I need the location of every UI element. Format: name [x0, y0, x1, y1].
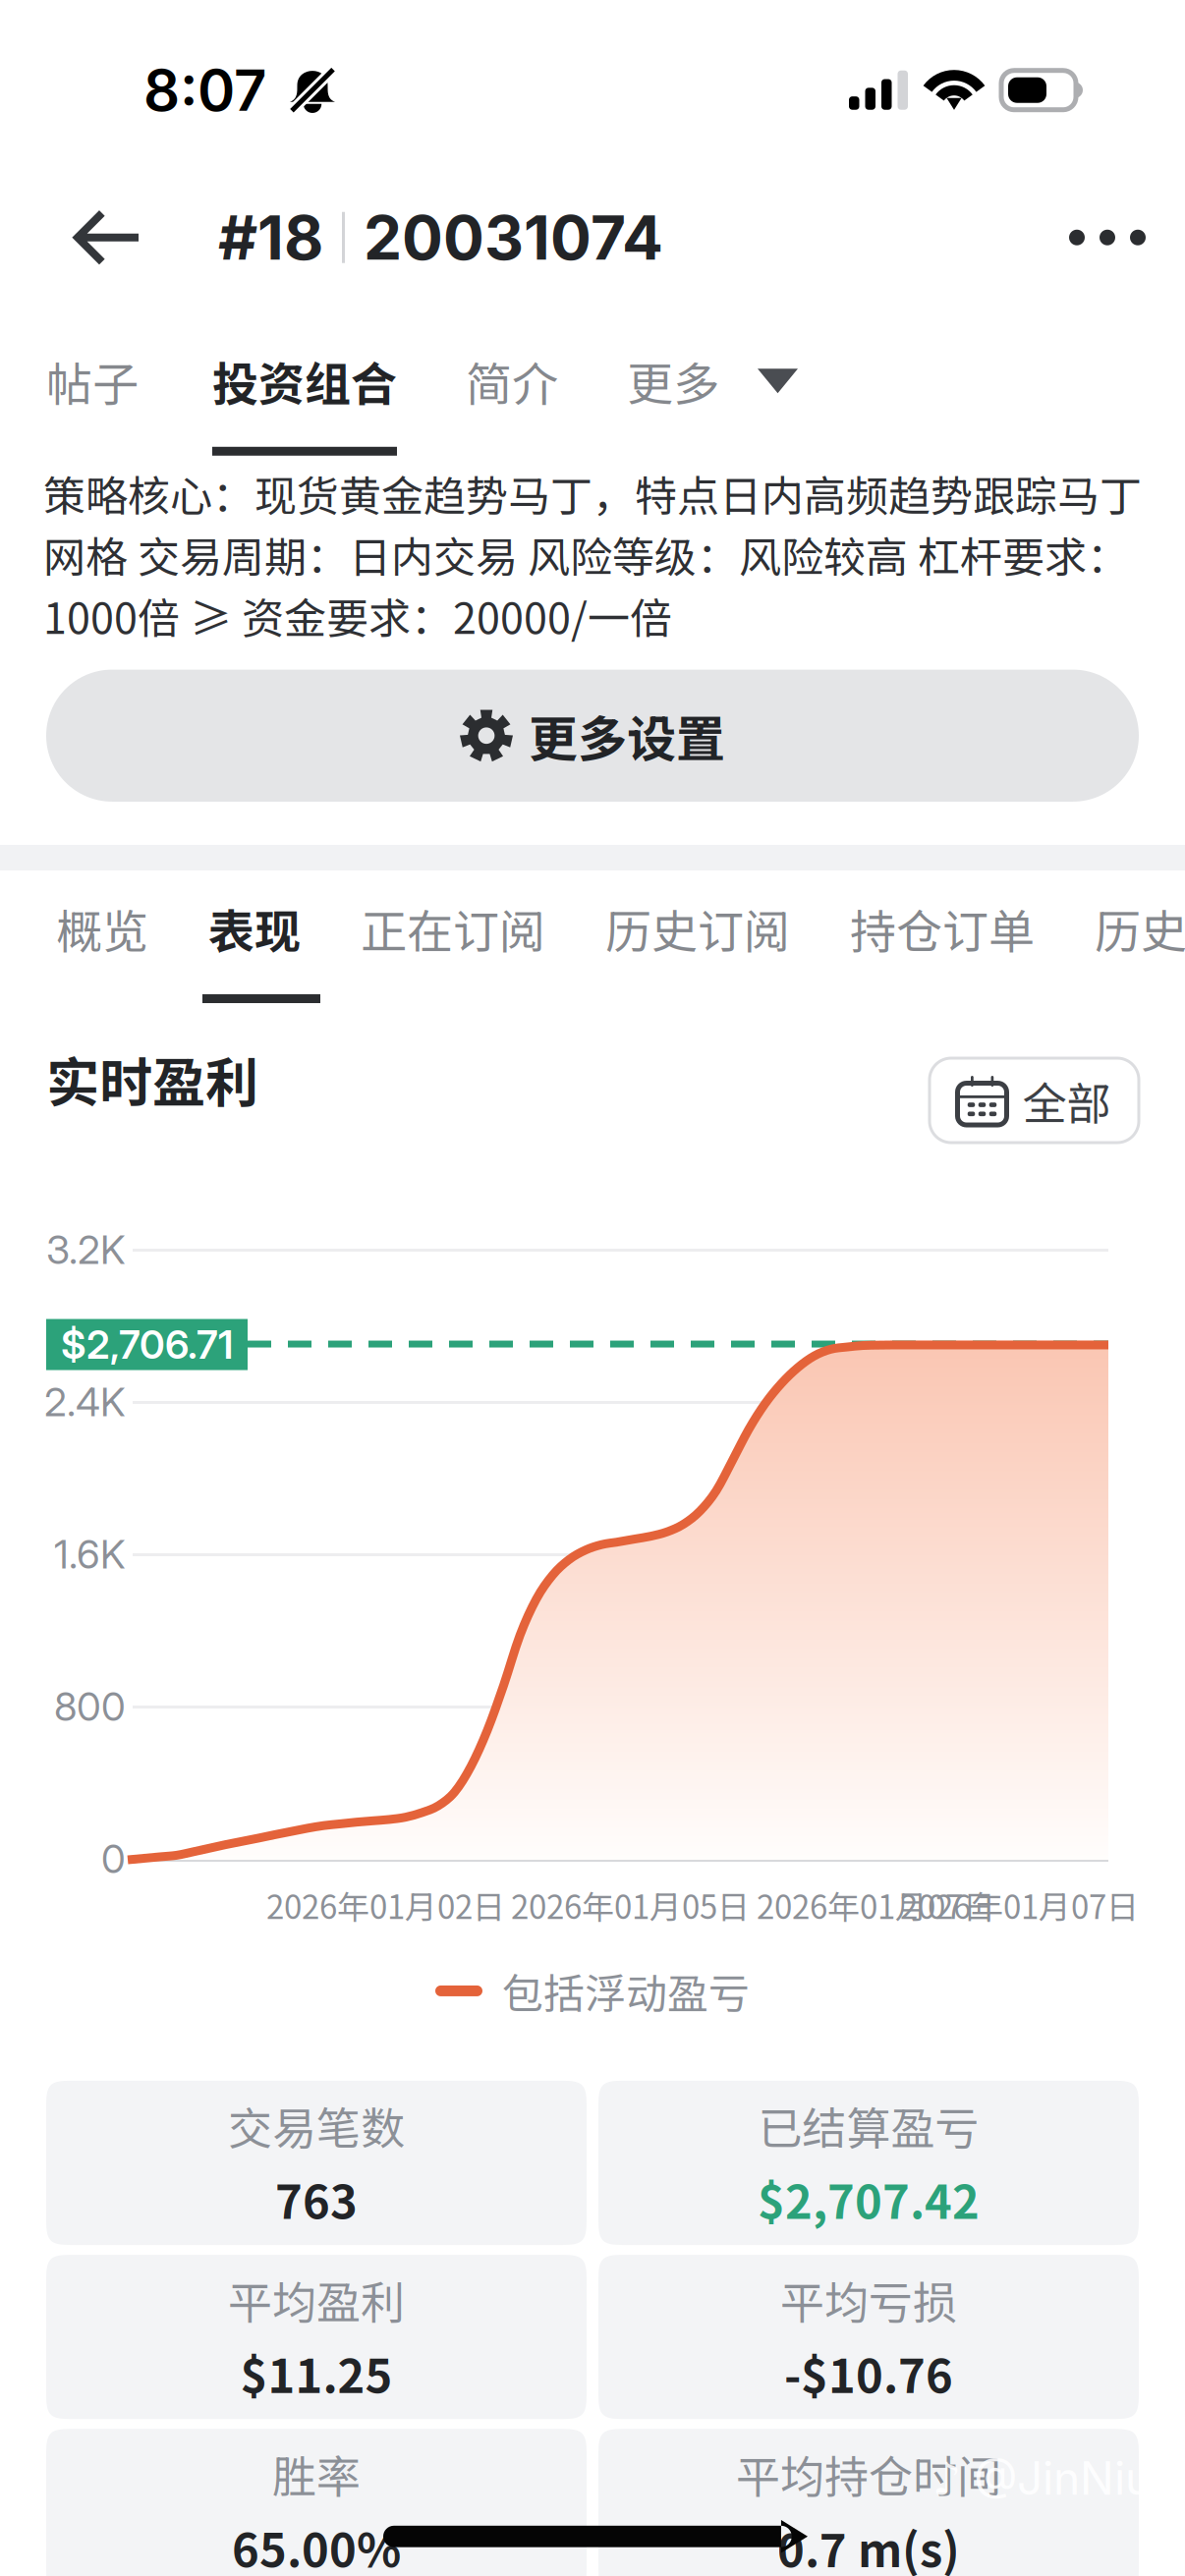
staticText: $11.25: [240, 2339, 393, 2406]
staticText: 2.4K: [44, 1378, 126, 1426]
staticText: 投资组合: [212, 347, 397, 414]
staticText: 平均亏损: [780, 2268, 957, 2332]
staticText: 20031074: [364, 201, 663, 274]
staticText: 全部: [1022, 1068, 1111, 1132]
staticText: 平均盈利: [228, 2268, 405, 2332]
staticText: 2026年01月05日: [511, 1881, 750, 1928]
staticText: $2,707.42: [758, 2165, 980, 2232]
staticText: 65.00%: [232, 2514, 401, 2576]
button[interactable]: 历史订阅: [605, 891, 790, 966]
button[interactable]: 更多设置: [46, 670, 1139, 802]
button[interactable]: 全部: [930, 1058, 1162, 1143]
staticText: 帖子: [46, 347, 139, 414]
staticText: #18: [218, 201, 323, 274]
staticText: 已结算盈亏: [758, 2093, 979, 2157]
staticText: 简介: [466, 347, 558, 414]
staticText: 胜率: [272, 2442, 361, 2506]
staticText: 8:07: [143, 56, 266, 125]
staticText: 表现: [208, 895, 301, 962]
staticText: 0.7 m(s): [777, 2514, 960, 2576]
button[interactable]: 投资组合: [212, 342, 397, 420]
staticText: 更多设置: [529, 700, 725, 771]
staticText: 800: [54, 1683, 126, 1730]
button[interactable]: 帖子: [46, 342, 139, 420]
staticText: 包括浮动盈亏: [502, 1961, 750, 2021]
staticText: 更多: [627, 347, 719, 414]
staticText: 概览: [56, 895, 148, 962]
staticText: 实时盈利: [46, 1040, 258, 1117]
staticText: 历史订阅: [605, 895, 790, 962]
staticText: 1.6K: [54, 1530, 126, 1578]
staticText: 持仓订单: [850, 895, 1035, 962]
staticText: 历史: [1095, 895, 1185, 962]
staticText: 策略核心：现货黄金趋势马丁，特点日内高频趋势跟踪马丁网格 交易周期：日内交易 风…: [43, 463, 1142, 646]
staticText: $2,706.71: [61, 1321, 233, 1368]
staticText: 2026年01月07日: [900, 1881, 1139, 1928]
staticText: ♪ @JinNiu: [932, 2451, 1152, 2506]
staticText: 763: [275, 2165, 358, 2232]
staticText: 交易笔数: [228, 2093, 405, 2157]
button[interactable]: 正在订阅: [361, 891, 545, 966]
button[interactable]: 更多: [627, 342, 798, 420]
staticText: 正在订阅: [361, 895, 545, 962]
staticText: -$10.76: [784, 2339, 953, 2406]
button[interactable]: 表现: [208, 891, 301, 966]
button[interactable]: More options: [1030, 192, 1185, 283]
button[interactable]: 概览: [56, 891, 148, 966]
staticText: 2026年01月07日: [757, 1881, 995, 1928]
staticText: 2026年01月02日: [266, 1881, 505, 1928]
staticText: 平均持仓时间: [736, 2442, 1001, 2506]
staticText: 3.2K: [46, 1226, 126, 1273]
button[interactable]: 简介: [466, 342, 558, 420]
staticText: 0: [101, 1835, 126, 1883]
button[interactable]: 持仓订单: [850, 891, 1035, 966]
button[interactable]: Back: [0, 185, 218, 290]
